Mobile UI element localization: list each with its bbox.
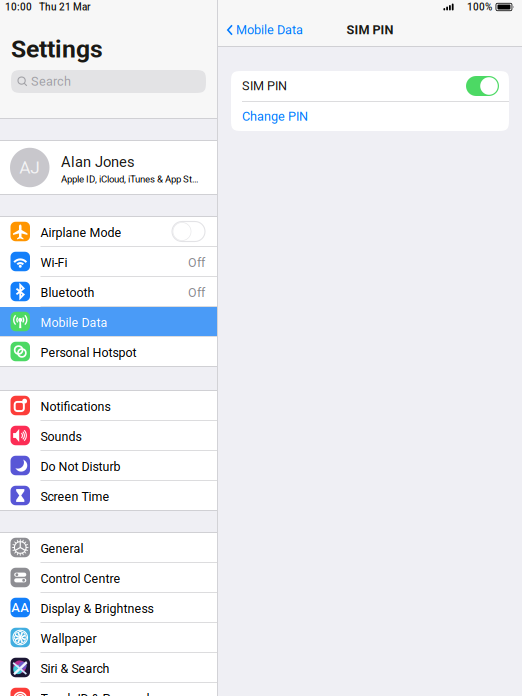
button[interactable]: Wi-Fi [0,247,217,276]
staticText: General [40,541,83,556]
staticText: Notifications [40,399,110,414]
button[interactable]: Mobile Data [218,14,311,46]
staticText: Siri & Search [40,661,109,676]
button[interactable]: Sounds [0,421,217,450]
button[interactable]: AJ [0,141,217,194]
staticText: Mobile Data [40,315,107,330]
staticText: Screen Time [40,489,109,504]
staticText: Search [31,74,71,89]
staticText: Settings [11,34,103,63]
staticText: Control Centre [40,571,120,586]
staticText: Personal Hotspot [40,345,136,360]
staticText: AJ [19,157,40,178]
button[interactable]: Bluetooth [0,277,217,306]
staticText: Sounds [40,429,81,444]
staticText: Apple ID, iCloud, iTunes & App St… [61,173,198,185]
staticText: 10:00 [5,1,32,13]
staticText: Touch ID & Passcode [40,691,156,696]
button[interactable]: AA [0,593,217,622]
staticText: Mobile Data [236,23,303,37]
staticText: Display & Brightness [40,601,153,616]
staticText: Thu 21 Mar [39,1,91,13]
staticText: Off [188,285,205,300]
button[interactable]: Airplane Mode [0,217,217,246]
button[interactable]: Control Centre [0,563,217,592]
staticText: SIM PIN [346,23,393,37]
staticText: AA [11,600,29,615]
button[interactable]: Siri & Search [0,653,217,682]
button[interactable]: Change PIN [231,102,509,131]
staticText: Change PIN [242,109,308,124]
button[interactable]: General [0,533,217,562]
staticText: Off [188,255,205,270]
button[interactable]: Touch ID & Passcode [0,683,217,696]
button[interactable]: Wallpaper [0,623,217,652]
button[interactable]: Mobile Data [0,307,217,336]
staticText: Do Not Disturb [40,459,120,474]
button[interactable]: Screen Time [0,481,217,510]
button[interactable]: Personal Hotspot [0,337,217,366]
staticText: Airplane Mode [40,225,121,240]
staticText: Bluetooth [40,285,94,300]
staticText: Alan Jones [61,153,135,170]
staticText: Wi-Fi [40,255,67,270]
staticText: 100% [467,1,492,13]
staticText: Wallpaper [40,631,96,646]
button[interactable]: Do Not Disturb [0,451,217,480]
button[interactable]: Notifications [0,391,217,420]
staticText: SIM PIN [242,79,287,93]
